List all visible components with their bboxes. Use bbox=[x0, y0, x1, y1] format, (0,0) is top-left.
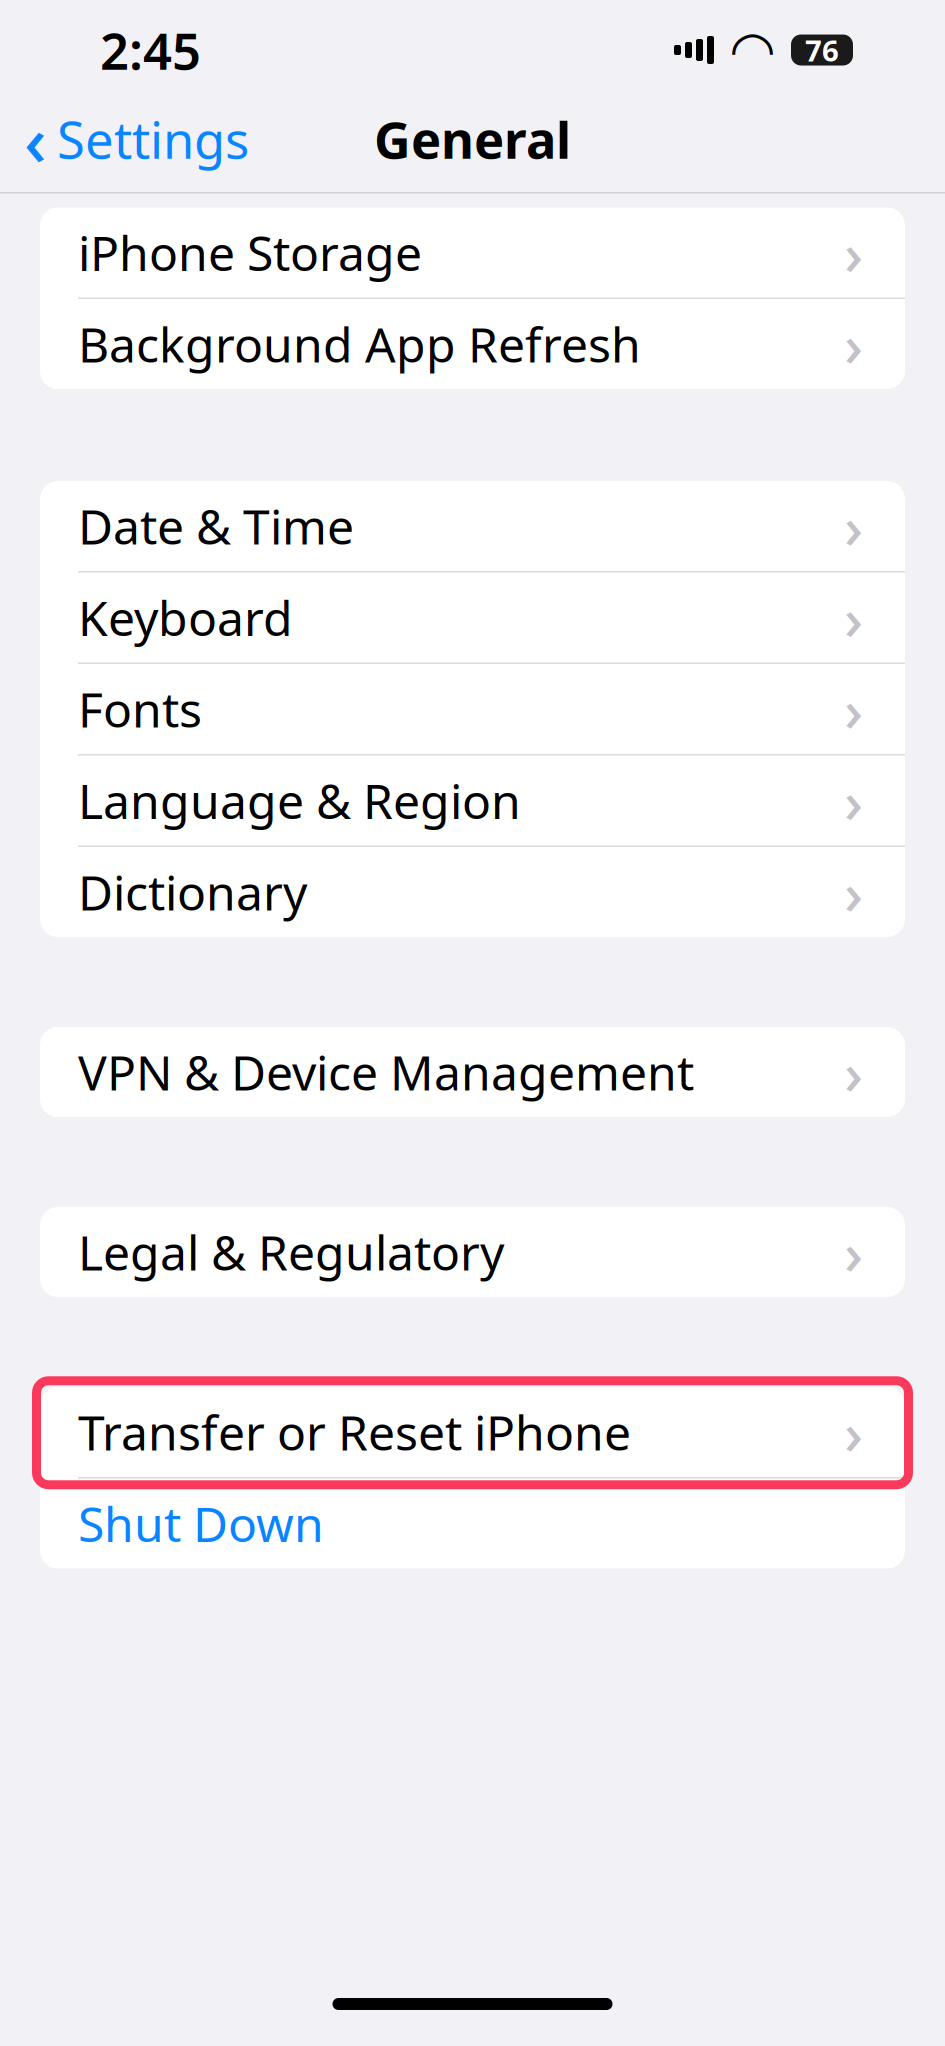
staticText: Keyboard bbox=[78, 586, 293, 649]
staticText: › bbox=[844, 487, 863, 565]
staticText: › bbox=[844, 853, 863, 931]
button[interactable]: Keyboard bbox=[40, 572, 905, 662]
staticText: › bbox=[844, 305, 863, 383]
staticText: Settings bbox=[57, 105, 249, 173]
button[interactable]: Shut Down bbox=[40, 1478, 905, 1568]
button[interactable]: Legal & Regulatory bbox=[40, 1207, 905, 1297]
staticText: 76 bbox=[805, 30, 839, 69]
button[interactable]: Background App Refresh bbox=[40, 299, 905, 389]
staticText: › bbox=[844, 670, 863, 748]
button[interactable]: iPhone Storage bbox=[40, 207, 905, 297]
staticText: Transfer or Reset iPhone bbox=[78, 1400, 631, 1464]
staticText: General bbox=[374, 105, 571, 173]
staticText: ◠ bbox=[732, 20, 773, 80]
button[interactable]: Fonts bbox=[40, 664, 905, 754]
staticText: › bbox=[844, 1213, 863, 1291]
button[interactable]: Date & Time bbox=[40, 481, 905, 571]
staticText: › bbox=[844, 578, 863, 656]
button[interactable]: Dictionary bbox=[40, 847, 905, 937]
staticText: iPhone Storage bbox=[78, 221, 422, 284]
staticText: 2:45 bbox=[100, 16, 201, 84]
staticText: Language & Region bbox=[78, 769, 521, 832]
staticText: Dictionary bbox=[78, 860, 307, 924]
staticText: VPN & Device Management bbox=[78, 1040, 694, 1104]
button[interactable]: ‹ bbox=[0, 104, 263, 174]
staticText: Legal & Regulatory bbox=[78, 1220, 504, 1284]
staticText: › bbox=[844, 761, 863, 839]
button[interactable]: Language & Region bbox=[40, 755, 905, 845]
staticText: Shut Down bbox=[78, 1492, 324, 1555]
button[interactable]: VPN & Device Management bbox=[40, 1027, 905, 1117]
staticText: Background App Refresh bbox=[78, 312, 641, 376]
staticText: Date & Time bbox=[78, 494, 354, 558]
staticText: Fonts bbox=[78, 677, 202, 741]
staticText: › bbox=[844, 213, 863, 291]
button[interactable]: Transfer or Reset iPhone bbox=[40, 1387, 905, 1477]
staticText: ‹ bbox=[24, 93, 47, 185]
staticText: › bbox=[844, 1033, 863, 1111]
staticText: › bbox=[844, 1393, 863, 1471]
